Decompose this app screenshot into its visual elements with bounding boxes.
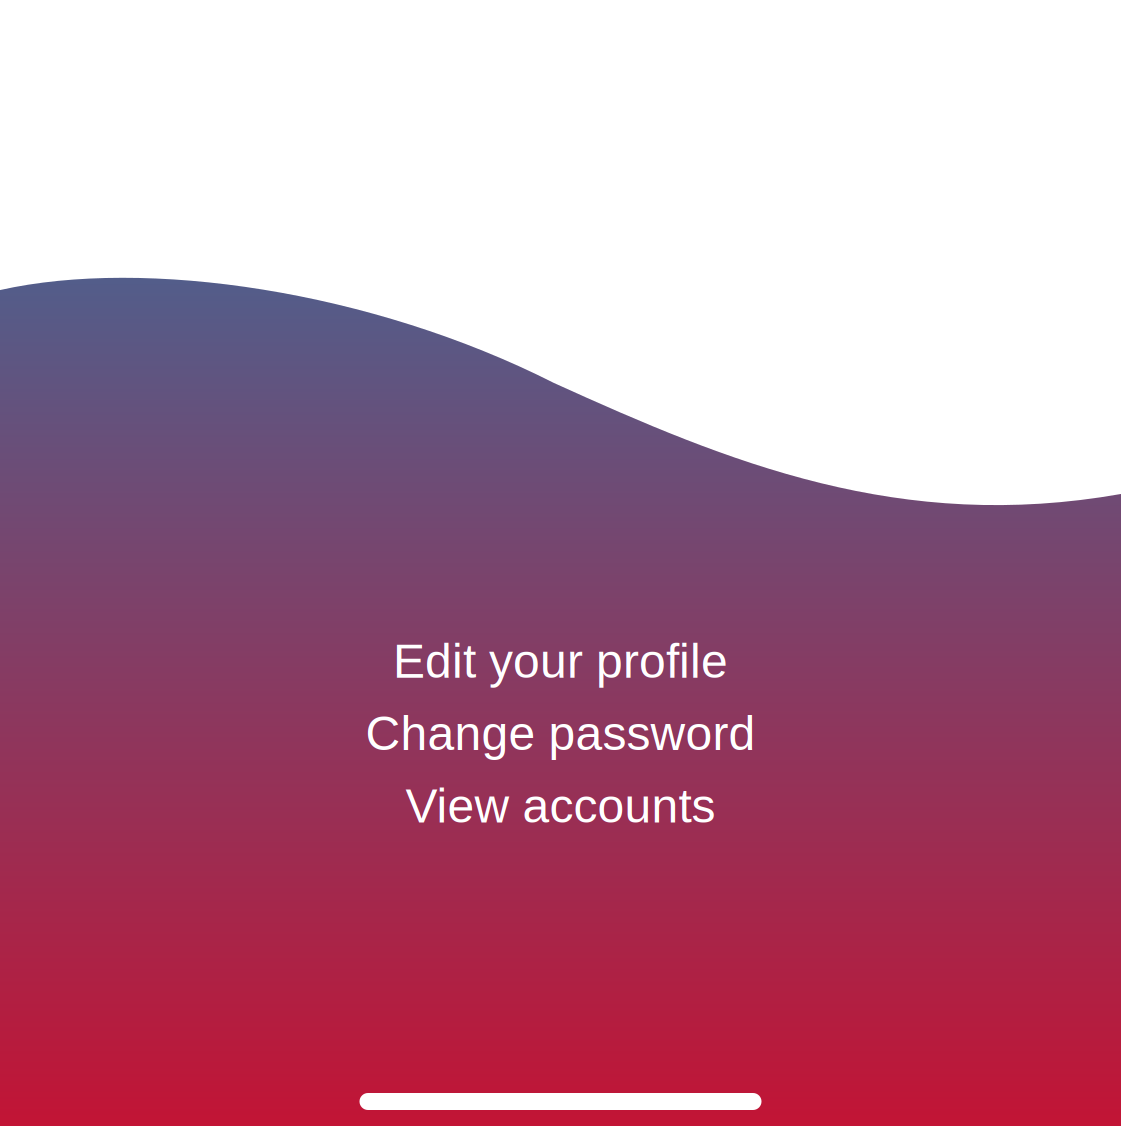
button[interactable]: Change password: [0, 697, 1121, 770]
staticText: Change password: [365, 707, 755, 760]
button[interactable]: View accounts: [0, 770, 1121, 842]
staticText: Edit your profile: [393, 634, 728, 688]
button[interactable]: Edit your profile: [0, 625, 1121, 697]
staticText: View accounts: [405, 779, 715, 832]
